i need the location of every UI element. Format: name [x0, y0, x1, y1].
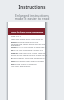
staticText: Swallow the tablet whole and do not chew	[11, 43, 48, 48]
staticText: or crush it. If you forget a dose take i…	[11, 46, 48, 51]
staticText: Instructions	[0, 4, 64, 10]
staticText: missed tablet. Store the medicine in a c…	[11, 57, 48, 62]
staticText: dry place away from direct sunlight and	[11, 60, 48, 65]
staticText: Enlarged instructions make it easier to …	[0, 13, 64, 21]
staticText: Step 2 of 4	[11, 35, 21, 38]
staticText: How to take your medicine	[11, 30, 44, 33]
staticText: time for the next one. Never take two	[11, 52, 47, 55]
staticText: doses at the same time to make up for a	[11, 54, 48, 59]
staticText: out of the reach of children.	[11, 63, 38, 66]
staticText: Ask your pharmacist.	[11, 65, 31, 68]
staticText: each morning before you eat breakfast.	[11, 41, 48, 46]
staticText: Take one tablet with a full glass of wat…	[11, 38, 48, 43]
staticText: soon as you remember unless it is almost	[11, 49, 48, 54]
